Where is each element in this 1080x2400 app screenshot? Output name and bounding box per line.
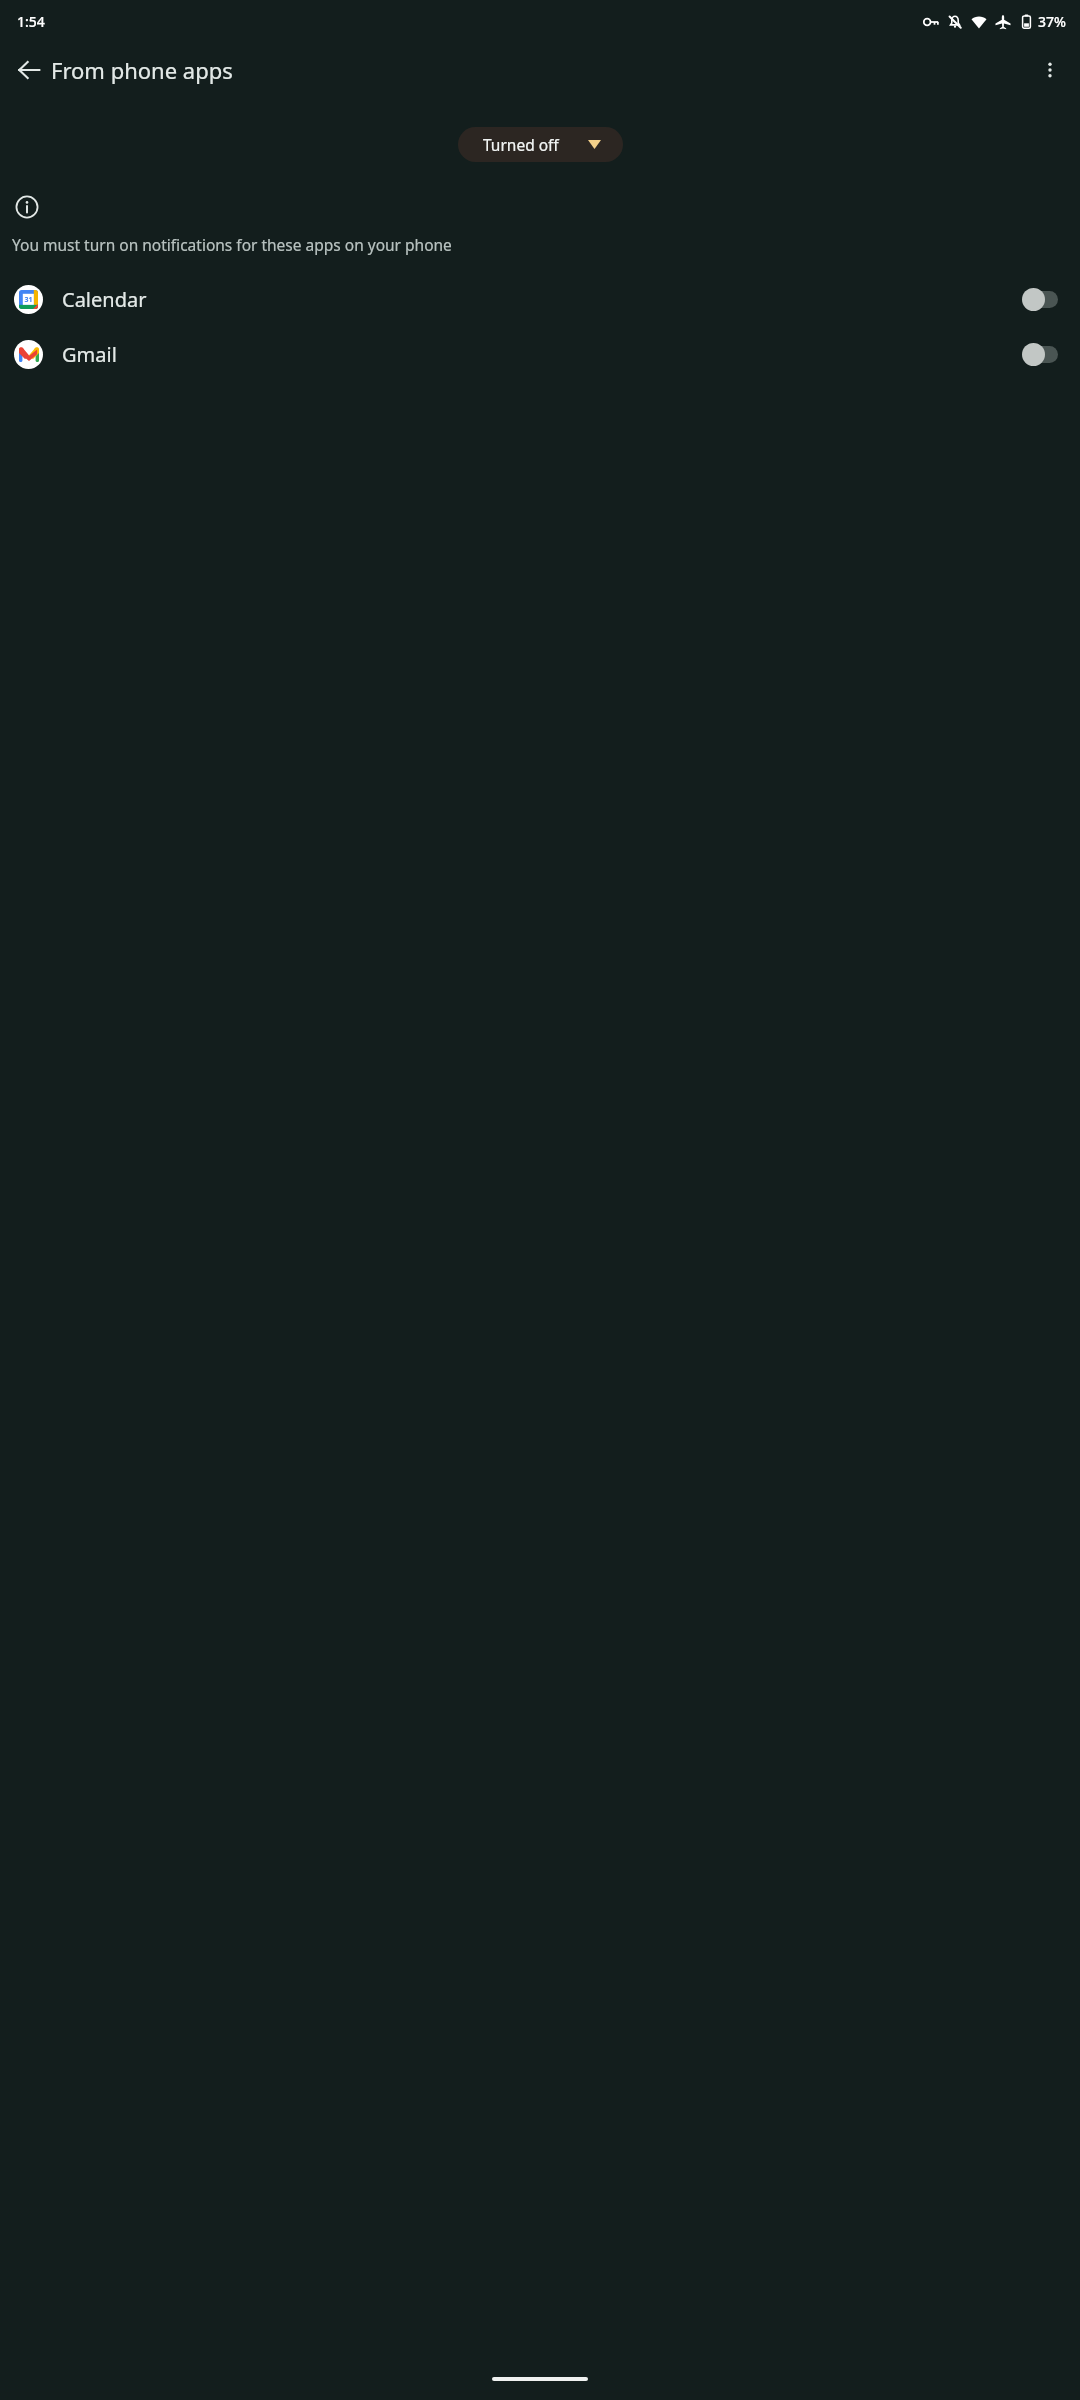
button[interactable]: Gmail (0, 333, 1080, 375)
staticText: Gmail (62, 341, 117, 368)
staticText: From phone apps (51, 55, 233, 85)
button[interactable]: More options (1030, 50, 1070, 90)
button[interactable]: Toggle notifications (1023, 287, 1057, 311)
button[interactable]: Turned off (458, 127, 623, 162)
staticText: 37% (1038, 12, 1066, 31)
staticText: You must turn on notifications for these… (12, 234, 452, 255)
staticText: 31 (24, 295, 33, 305)
button[interactable]: Back (9, 50, 49, 90)
staticText: 1:54 (17, 12, 45, 31)
button[interactable]: Toggle notifications (1023, 342, 1057, 366)
staticText: Calendar (62, 286, 147, 313)
staticText: Turned off (483, 134, 559, 155)
button[interactable]: 31 (0, 278, 1080, 320)
